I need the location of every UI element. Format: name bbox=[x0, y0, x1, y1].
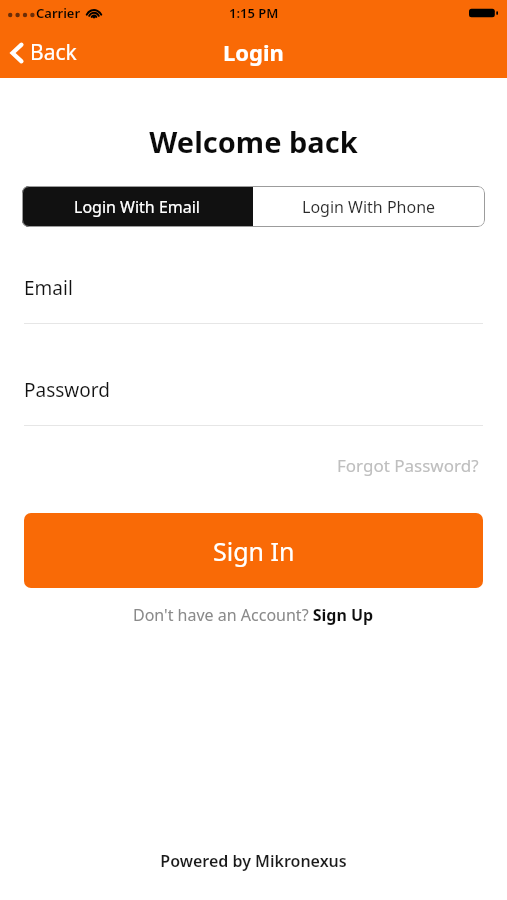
staticText: Don't have an Account? Sign Up bbox=[133, 604, 374, 626]
staticText: Forgot Password? bbox=[337, 454, 479, 477]
staticText: Login With Email bbox=[74, 196, 201, 218]
staticText: Login bbox=[223, 37, 284, 67]
button[interactable]: Login With Phone bbox=[253, 186, 485, 227]
button[interactable]: Sign In bbox=[24, 513, 483, 588]
staticText: Powered by Mikronexus bbox=[0, 850, 507, 872]
staticText: Back bbox=[30, 38, 77, 67]
button[interactable]: Back bbox=[0, 32, 89, 73]
button[interactable]: Password bbox=[24, 377, 483, 426]
staticText: Login With Phone bbox=[302, 196, 436, 218]
staticText: Password bbox=[24, 377, 110, 403]
staticText: 1:15 PM bbox=[229, 4, 279, 22]
button[interactable]: Don't have an Account? Sign Up bbox=[127, 602, 380, 628]
staticText: Welcome back bbox=[0, 122, 507, 161]
button[interactable]: Forgot Password? bbox=[333, 450, 483, 481]
staticText: Sign In bbox=[213, 534, 295, 568]
staticText: Email bbox=[24, 275, 73, 301]
staticText: Carrier bbox=[36, 4, 81, 22]
button[interactable]: Email bbox=[24, 275, 483, 324]
button[interactable]: Login With Email bbox=[22, 186, 253, 227]
